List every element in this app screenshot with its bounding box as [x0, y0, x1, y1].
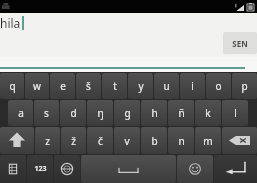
button[interactable]: y	[128, 73, 153, 99]
staticText: t	[113, 79, 117, 93]
staticText: w	[33, 79, 41, 93]
button[interactable]: b	[141, 127, 167, 154]
button[interactable]: č	[87, 127, 113, 154]
staticText: u	[163, 79, 170, 93]
button[interactable]: n	[168, 127, 194, 154]
staticText: q	[9, 79, 16, 93]
staticText: b	[151, 134, 158, 148]
button[interactable]: v	[114, 127, 140, 154]
button[interactable]: t	[102, 73, 127, 99]
button[interactable]: ž	[61, 127, 86, 154]
staticText: n	[178, 134, 185, 148]
staticText: 123	[34, 164, 47, 174]
staticText: y	[138, 79, 144, 93]
staticText: č	[98, 134, 103, 148]
button[interactable]: Enter	[214, 155, 257, 183]
staticText: z	[45, 134, 50, 148]
button[interactable]: o	[206, 73, 231, 99]
staticText: a	[18, 106, 24, 120]
staticText: ŋ	[97, 106, 104, 120]
button[interactable]: d	[60, 100, 86, 126]
button[interactable]: hila	[0, 13, 257, 57]
button[interactable]: Change language	[54, 155, 80, 183]
staticText: h	[151, 106, 158, 120]
button[interactable]: Backspace	[222, 127, 257, 154]
button[interactable]: a	[8, 100, 33, 126]
staticText: o	[215, 79, 222, 93]
staticText: SEN	[232, 38, 248, 49]
staticText: ž	[71, 134, 76, 148]
button[interactable]: s	[34, 100, 59, 126]
button[interactable]: e	[50, 73, 75, 99]
staticText: s	[44, 106, 49, 120]
button[interactable]: š	[76, 73, 101, 99]
button[interactable]: Keyboard settings	[0, 155, 26, 183]
button[interactable]: i	[180, 73, 205, 99]
button[interactable]: ñ	[168, 100, 194, 126]
staticText: k	[205, 106, 211, 120]
button[interactable]: m	[195, 127, 221, 154]
button[interactable]: u	[154, 73, 179, 99]
staticText: p	[241, 79, 248, 93]
staticText: g	[124, 106, 131, 120]
staticText: e	[60, 79, 66, 93]
button[interactable]: h	[141, 100, 167, 126]
button[interactable]: 123	[27, 155, 53, 183]
button[interactable]: ŋ	[87, 100, 113, 126]
button[interactable]: Shift	[0, 127, 34, 154]
staticText: v	[124, 134, 130, 148]
staticText: i	[191, 79, 194, 93]
button[interactable]: q	[0, 73, 24, 99]
button[interactable]: k	[195, 100, 221, 126]
button[interactable]: g	[114, 100, 140, 126]
button[interactable]: p	[232, 73, 257, 99]
staticText: ñ	[178, 106, 185, 120]
button[interactable]: l	[222, 100, 248, 126]
button[interactable]: SEN	[223, 32, 257, 54]
staticText: l	[234, 106, 237, 120]
button[interactable]: Space	[81, 155, 176, 183]
staticText: š	[86, 79, 91, 93]
staticText: m	[203, 134, 213, 148]
button[interactable]: Emoji	[177, 155, 213, 183]
staticText: hila	[0, 15, 21, 31]
staticText: d	[70, 106, 77, 120]
button[interactable]: w	[25, 73, 49, 99]
button[interactable]: z	[35, 127, 60, 154]
